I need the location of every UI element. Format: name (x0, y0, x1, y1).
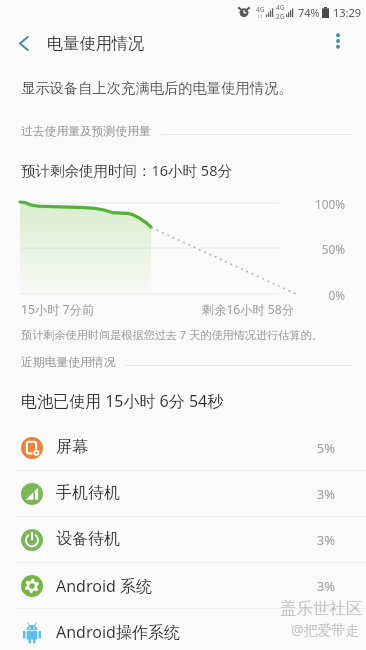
staticText: 4G (276, 3, 285, 12)
button[interactable]: More options (322, 25, 354, 57)
staticText: 15小时 7分前 (21, 301, 94, 318)
staticText: 电池已使用 15小时 6分 54秒 (21, 390, 224, 412)
staticText: 4G (256, 5, 265, 14)
staticText: 3% (270, 531, 335, 549)
button[interactable]: 手机待机 (0, 471, 366, 517)
staticText: 13:29 (333, 5, 362, 20)
staticText: 2G (276, 12, 285, 21)
staticText: 50% (285, 241, 345, 257)
staticText: 近期电量使用情况 (21, 355, 116, 370)
button[interactable]: Android操作系统 (0, 609, 366, 650)
staticText: 74% (298, 5, 320, 20)
button[interactable]: 设备待机 (0, 517, 366, 563)
staticText: 3% (270, 577, 335, 595)
staticText: 屏幕 (56, 437, 88, 457)
staticText: 设备待机 (56, 529, 120, 549)
staticText: 5% (270, 439, 335, 457)
staticText: Android 系统 (56, 575, 153, 597)
staticText: 3% (270, 485, 335, 503)
staticText: 电量使用情况 (47, 33, 145, 53)
button[interactable]: 屏幕 (0, 425, 366, 471)
staticText: 0% (285, 287, 345, 303)
staticText: Android操作系统 (56, 621, 180, 643)
staticText: 100% (285, 196, 345, 212)
button[interactable]: Android 系统 (0, 563, 366, 609)
staticText: 过去使用量及预测使用量 (21, 124, 151, 139)
staticText: 预计剩余使用时间是根据您过去 7 天的使用情况进行估算的。 (21, 327, 323, 342)
button[interactable]: Back (6, 25, 42, 61)
staticText: 手机待机 (56, 483, 120, 503)
staticText: 预计剩余使用时间：16小时 58分 (21, 160, 232, 180)
staticText: @把爱带走 (291, 620, 360, 639)
staticText: 剩余16小时 58分 (174, 301, 294, 318)
staticText: LT (258, 14, 263, 19)
staticText: 显示设备自上次充满电后的电量使用情况。 (21, 79, 293, 97)
staticText: 盖乐世社区 (280, 598, 363, 619)
